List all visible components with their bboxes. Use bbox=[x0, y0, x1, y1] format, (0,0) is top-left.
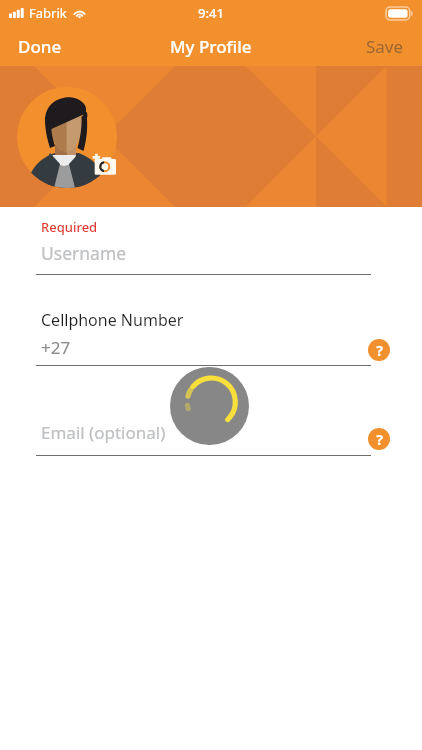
staticText: ? bbox=[376, 341, 383, 360]
staticText: Email (optional) bbox=[41, 421, 166, 444]
staticText: Required bbox=[41, 218, 98, 236]
staticText: Fabrik bbox=[29, 4, 67, 22]
staticText: Cellphone Number bbox=[41, 309, 184, 331]
button[interactable]: Change profile photo bbox=[17, 86, 117, 188]
staticText: ? bbox=[376, 430, 383, 449]
staticText: Save bbox=[366, 35, 404, 58]
staticText: Username bbox=[41, 241, 127, 265]
button[interactable]: Save bbox=[348, 27, 422, 66]
button[interactable]: Help bbox=[368, 339, 390, 361]
button[interactable]: Change photo bbox=[92, 154, 116, 175]
button[interactable]: Done bbox=[0, 27, 80, 66]
button[interactable]: Help bbox=[368, 428, 390, 450]
staticText: Done bbox=[18, 35, 62, 58]
staticText: My Profile bbox=[170, 35, 252, 58]
staticText: 9:41 bbox=[198, 4, 224, 22]
staticText: +27 bbox=[41, 336, 71, 359]
